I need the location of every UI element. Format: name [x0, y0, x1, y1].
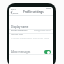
button[interactable]: Back [10, 10, 19, 14]
button[interactable]: About you [11, 32, 24, 35]
staticText: Back [13, 11, 19, 14]
button[interactable]: Email address [11, 28, 28, 31]
button[interactable]: Profile settings [23, 10, 44, 14]
staticText: A short biography line goes here [11, 36, 50, 39]
staticText: alex@mail.com [34, 29, 51, 32]
button[interactable]: Display name [11, 25, 29, 29]
staticText: 9:41 [11, 7, 16, 10]
button[interactable]: Allow messages [11, 50, 31, 54]
button[interactable]: Toggle messages [44, 50, 51, 54]
